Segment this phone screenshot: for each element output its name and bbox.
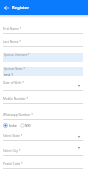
button[interactable]: Sponsor Username *	[3, 53, 83, 62]
staticText: Postal Code *	[3, 162, 23, 166]
button[interactable]: India	[3, 123, 17, 128]
staticText: Date of Birth *	[3, 81, 25, 85]
button[interactable]: Select State *	[3, 130, 83, 141]
button[interactable]: Back	[2, 4, 10, 12]
button[interactable]: Whatsapp Number *	[3, 109, 83, 120]
staticText: NRI	[25, 124, 31, 128]
button[interactable]: Mobile Number *	[3, 93, 83, 104]
staticText: Mobile Number *	[3, 97, 29, 101]
staticText: Sponsor Name *	[4, 67, 25, 71]
button[interactable]: Postal Code *	[3, 158, 83, 169]
staticText: Register	[12, 5, 30, 11]
staticText: First Name *	[3, 27, 22, 31]
staticText: Select State *	[3, 134, 23, 138]
staticText: Select City *	[3, 149, 21, 153]
staticText: Last Name *	[3, 40, 21, 44]
staticText: India	[9, 124, 17, 128]
staticText: Sponsor Username *	[4, 53, 30, 57]
button[interactable]: NRI	[20, 123, 31, 128]
button[interactable]: Last Name *	[3, 36, 83, 47]
staticText: Whatsapp Number *	[3, 113, 34, 117]
button[interactable]: First Name *	[3, 23, 83, 34]
staticText: test 1	[4, 72, 14, 76]
button[interactable]: Date of Birth *	[3, 80, 83, 91]
button[interactable]: Sponsor Name *	[3, 67, 83, 76]
button[interactable]: Select City *	[3, 145, 83, 156]
